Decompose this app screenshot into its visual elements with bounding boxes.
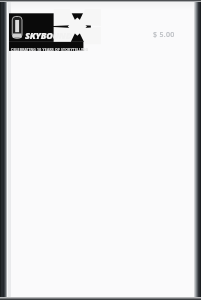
button[interactable]: Skybound X logo — [7, 2, 197, 298]
button[interactable]: $ 5.00 — [153, 30, 175, 40]
staticText: CELEBRATING 10 YEARS OF STORYTELLING — [11, 47, 104, 52]
staticText: SKYBOUND — [25, 29, 72, 41]
button[interactable]: Skybound X logo — [9, 11, 102, 53]
